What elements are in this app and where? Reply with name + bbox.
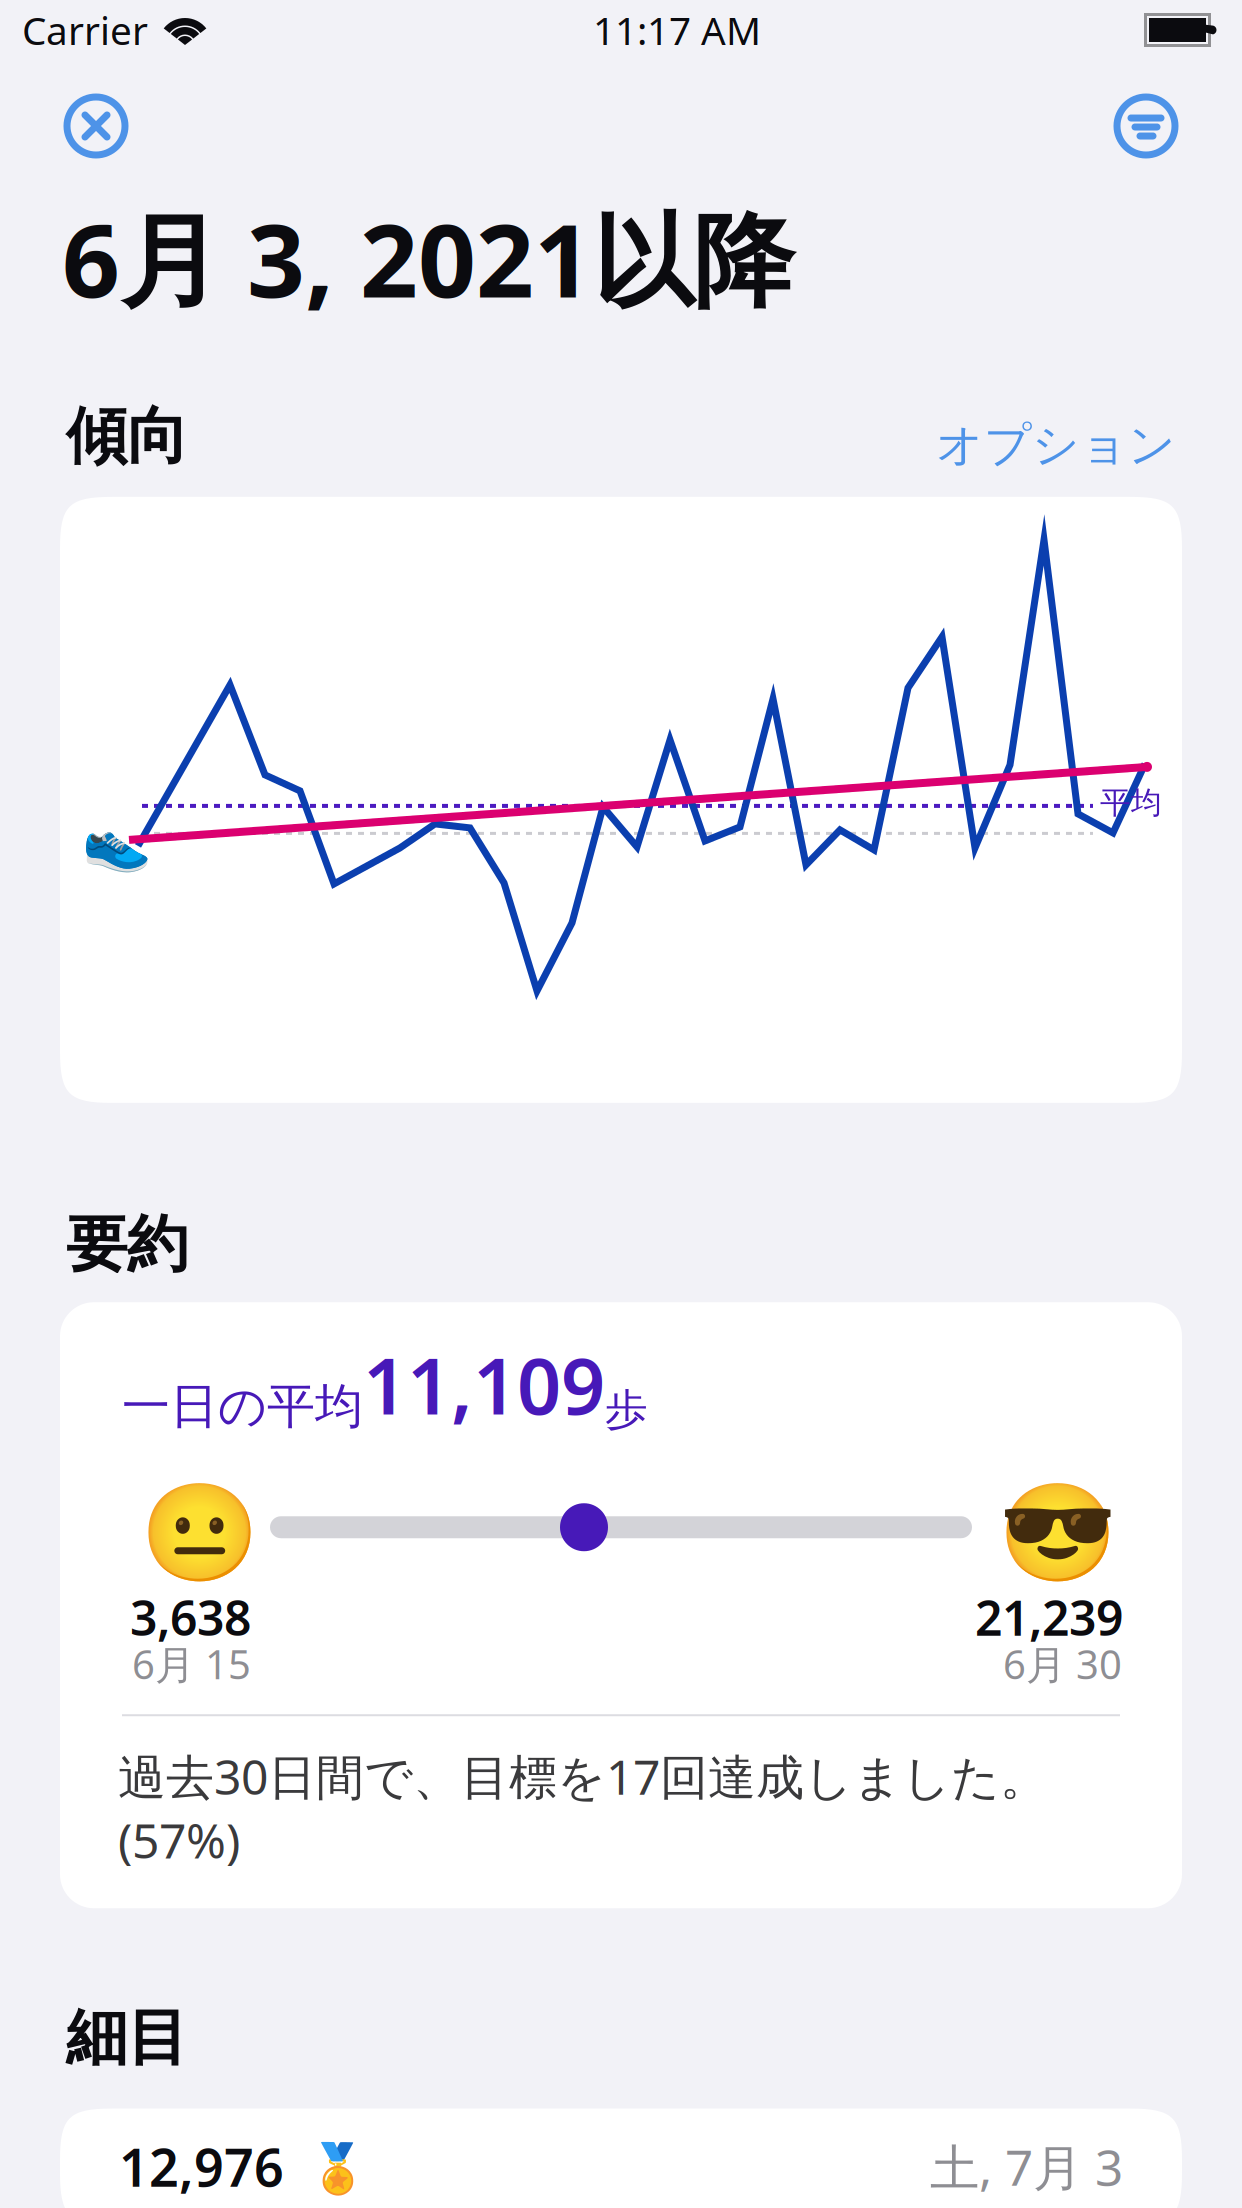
- staticText: 3,638: [130, 1585, 251, 1649]
- staticText: Carrier: [22, 4, 148, 56]
- button[interactable]: Sort options: [1110, 90, 1182, 162]
- staticText: 11,109: [363, 1333, 605, 1436]
- staticText: 土, 7月 3: [930, 2134, 1123, 2199]
- staticText: 😐: [140, 1478, 260, 1588]
- staticText: 👟: [82, 810, 152, 874]
- button[interactable]: 12,976: [60, 2109, 1182, 2208]
- staticText: オプション: [936, 417, 1176, 474]
- staticText: 11:17 AM: [593, 4, 761, 56]
- staticText: 一日の平均: [122, 1377, 363, 1436]
- staticText: 6月 3, 2021以降: [62, 191, 794, 326]
- staticText: 😎: [998, 1478, 1118, 1588]
- staticText: 6月 15: [132, 1637, 251, 1690]
- staticText: 平均: [1100, 784, 1162, 822]
- staticText: 細目: [66, 2000, 188, 2075]
- button[interactable]: Close: [60, 90, 132, 162]
- staticText: 過去30日間で、目標を17回達成しました。(57%): [118, 1744, 1048, 1872]
- staticText: 要約: [66, 1207, 188, 1282]
- staticText: 🏅: [284, 2135, 368, 2198]
- button[interactable]: オプション: [936, 417, 1176, 474]
- staticText: 歩: [605, 1383, 648, 1436]
- staticText: 傾向: [66, 399, 188, 474]
- staticText: 6月 30: [1003, 1637, 1122, 1690]
- staticText: 12,976: [119, 2132, 284, 2201]
- staticText: 21,239: [975, 1585, 1123, 1649]
